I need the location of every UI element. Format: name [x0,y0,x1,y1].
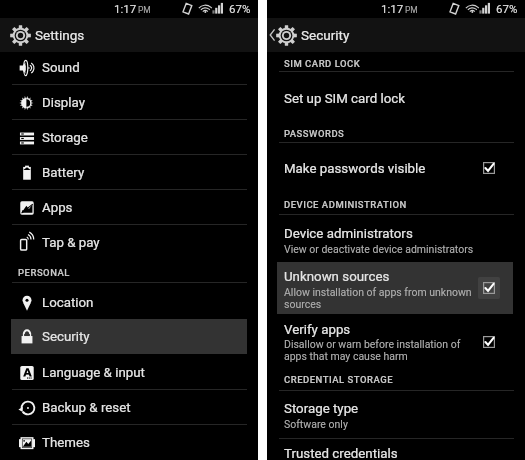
staticText: CREDENTIAL STORAGE [284,374,394,385]
staticText: PASSWORDS [284,128,345,139]
staticText: apps that may cause harm [284,350,408,362]
button[interactable]: Make passwords visible [267,143,525,185]
button[interactable]: Checkbox [477,276,501,300]
staticText: Location [42,295,94,311]
staticText: Unknown sources [284,269,390,285]
staticText: PM [138,5,151,15]
button[interactable]: Display [0,85,258,120]
staticText: Display [42,95,85,111]
staticText: 67% [229,2,251,15]
staticText: Security [42,329,90,345]
button[interactable]: Battery [0,155,258,190]
button[interactable]: Checkbox [477,156,501,180]
staticText: Battery [42,165,85,181]
staticText: Settings [35,27,85,43]
button[interactable]: Set up SIM card lock [267,72,525,112]
staticText: Storage [42,130,88,146]
staticText: Storage type [284,401,359,417]
staticText: SIM CARD LOCK [284,58,361,69]
staticText: Security [301,27,350,43]
staticText: PERSONAL [18,267,70,278]
staticText: Make passwords visible [284,161,426,177]
staticText: 67% [496,2,518,15]
button[interactable]: Unknown sources [267,262,525,314]
staticText: PM [405,5,418,15]
button[interactable]: Sound [0,50,258,85]
staticText: Trusted credentials [284,446,398,460]
button[interactable]: Backup & reset [0,390,258,425]
button[interactable]: Navigate up [267,28,281,42]
staticText: Backup & reset [42,400,131,416]
button[interactable]: Storage [0,120,258,155]
staticText: Device administrators [284,226,413,242]
button[interactable]: Security [0,319,258,354]
staticText: Verify apps [284,322,351,338]
button[interactable]: Apps [0,190,258,225]
button[interactable]: Tap & pay [0,225,258,260]
staticText: Allow installation of apps from unknown [284,286,472,298]
staticText: Themes [42,435,90,451]
button[interactable]: Device administrators [267,215,525,262]
button[interactable]: Settings [0,18,258,52]
staticText: Sound [42,60,80,76]
button[interactable]: Trusted credentials [267,439,525,460]
staticText: Apps [42,200,73,216]
button[interactable]: Storage type [267,391,525,438]
button[interactable]: Checkbox [477,330,501,354]
staticText: 1:17 [114,2,137,15]
staticText: 1:17 [381,2,404,15]
staticText: Software only [284,418,348,430]
button[interactable]: Themes [0,425,258,460]
staticText: DEVICE ADMINISTRATION [284,199,407,210]
button[interactable]: Language & input [0,355,258,390]
button[interactable]: Location [0,285,258,320]
staticText: View or deactivate device administrators [284,243,474,255]
button[interactable]: Verify apps [267,314,525,367]
staticText: Language & input [42,365,145,381]
staticText: Tap & pay [42,235,100,251]
staticText: Disallow or warn before installation of [284,338,461,350]
staticText: Set up SIM card lock [284,91,405,107]
staticText: sources [284,298,322,310]
